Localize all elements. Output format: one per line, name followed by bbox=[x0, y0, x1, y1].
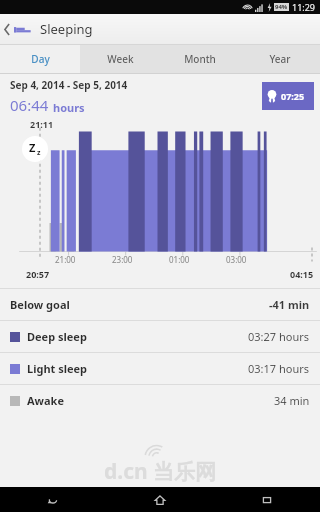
staticText: 03:27 hours bbox=[248, 329, 310, 344]
staticText: Year bbox=[269, 52, 291, 66]
button[interactable]: Back bbox=[0, 14, 34, 44]
staticText: 04:15 bbox=[290, 268, 314, 280]
button[interactable]: Week bbox=[80, 45, 160, 73]
staticText: 06:44 bbox=[10, 95, 49, 115]
staticText: Light sleep bbox=[27, 361, 88, 376]
staticText: Day bbox=[31, 52, 50, 66]
staticText: 23:00 bbox=[112, 254, 133, 265]
staticText: Deep sleep bbox=[27, 329, 87, 344]
staticText: Sleeping bbox=[40, 20, 93, 38]
staticText: 07:25 bbox=[281, 90, 305, 102]
staticText: 01:00 bbox=[169, 254, 190, 265]
staticText: 11:29 bbox=[292, 1, 316, 13]
button[interactable]: Back bbox=[0, 487, 106, 512]
staticText: 34 min bbox=[274, 393, 310, 408]
staticText: 21:11 bbox=[30, 118, 54, 130]
staticText: 21:00 bbox=[55, 254, 76, 265]
staticText: 20:57 bbox=[26, 268, 50, 280]
staticText: d.cn 当乐网 bbox=[104, 457, 217, 486]
staticText: Z bbox=[29, 140, 36, 155]
staticText: 94% bbox=[275, 3, 288, 11]
button[interactable]: Deep sleep bbox=[0, 321, 320, 352]
staticText: Awake bbox=[27, 393, 65, 408]
button[interactable]: Awake bbox=[0, 385, 320, 416]
button[interactable]: 07:25 bbox=[262, 82, 314, 110]
button[interactable]: Year bbox=[240, 45, 320, 73]
staticText: Week bbox=[107, 52, 134, 66]
staticText: hours bbox=[53, 100, 85, 115]
button[interactable]: Month bbox=[160, 45, 240, 73]
button[interactable]: Below goal bbox=[0, 289, 320, 320]
button[interactable]: Day bbox=[0, 45, 80, 73]
staticText: -41 min bbox=[269, 297, 310, 312]
staticText: Below goal bbox=[10, 297, 70, 312]
button[interactable]: Light sleep bbox=[0, 353, 320, 384]
staticText: Month bbox=[184, 52, 216, 66]
staticText: 03:17 hours bbox=[248, 361, 310, 376]
staticText: z bbox=[37, 148, 41, 158]
staticText: Sep 4, 2014 - Sep 5, 2014 bbox=[10, 78, 128, 92]
button[interactable]: Recent apps bbox=[213, 487, 320, 512]
staticText: 03:00 bbox=[226, 254, 247, 265]
button[interactable]: Home bbox=[106, 487, 213, 512]
